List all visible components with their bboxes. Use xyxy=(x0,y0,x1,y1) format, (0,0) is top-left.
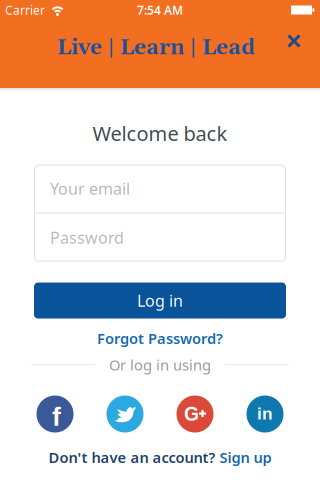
staticText: Your email xyxy=(50,178,130,199)
button[interactable]: Close xyxy=(287,34,301,48)
button[interactable]: Don't have an account? xyxy=(48,447,271,467)
staticText: Password xyxy=(50,227,124,248)
button[interactable]: Log in with Google xyxy=(176,395,213,432)
staticText: Carrier xyxy=(5,2,45,18)
staticText: 7:54 AM xyxy=(137,2,183,18)
button[interactable]: Password xyxy=(34,214,286,262)
staticText: Or log in using xyxy=(109,355,211,374)
staticText: Log in xyxy=(137,290,183,311)
staticText: Don't have an account? xyxy=(48,447,215,467)
button[interactable]: Your email xyxy=(34,165,286,213)
button[interactable]: Log in with Facebook xyxy=(36,395,73,432)
staticText: G xyxy=(184,403,199,425)
button[interactable]: Log in with LinkedIn xyxy=(246,395,283,432)
staticText: Welcome back xyxy=(92,120,227,147)
staticText: f xyxy=(52,402,61,431)
button[interactable]: Log in with Twitter xyxy=(106,395,143,432)
staticText: Live | Learn | Lead xyxy=(57,35,255,61)
staticText: Sign up xyxy=(219,447,271,467)
button[interactable]: Log in xyxy=(34,283,286,319)
button[interactable]: Forgot Password? xyxy=(97,329,223,348)
staticText: in xyxy=(257,404,273,423)
staticText: Forgot Password? xyxy=(97,329,223,348)
